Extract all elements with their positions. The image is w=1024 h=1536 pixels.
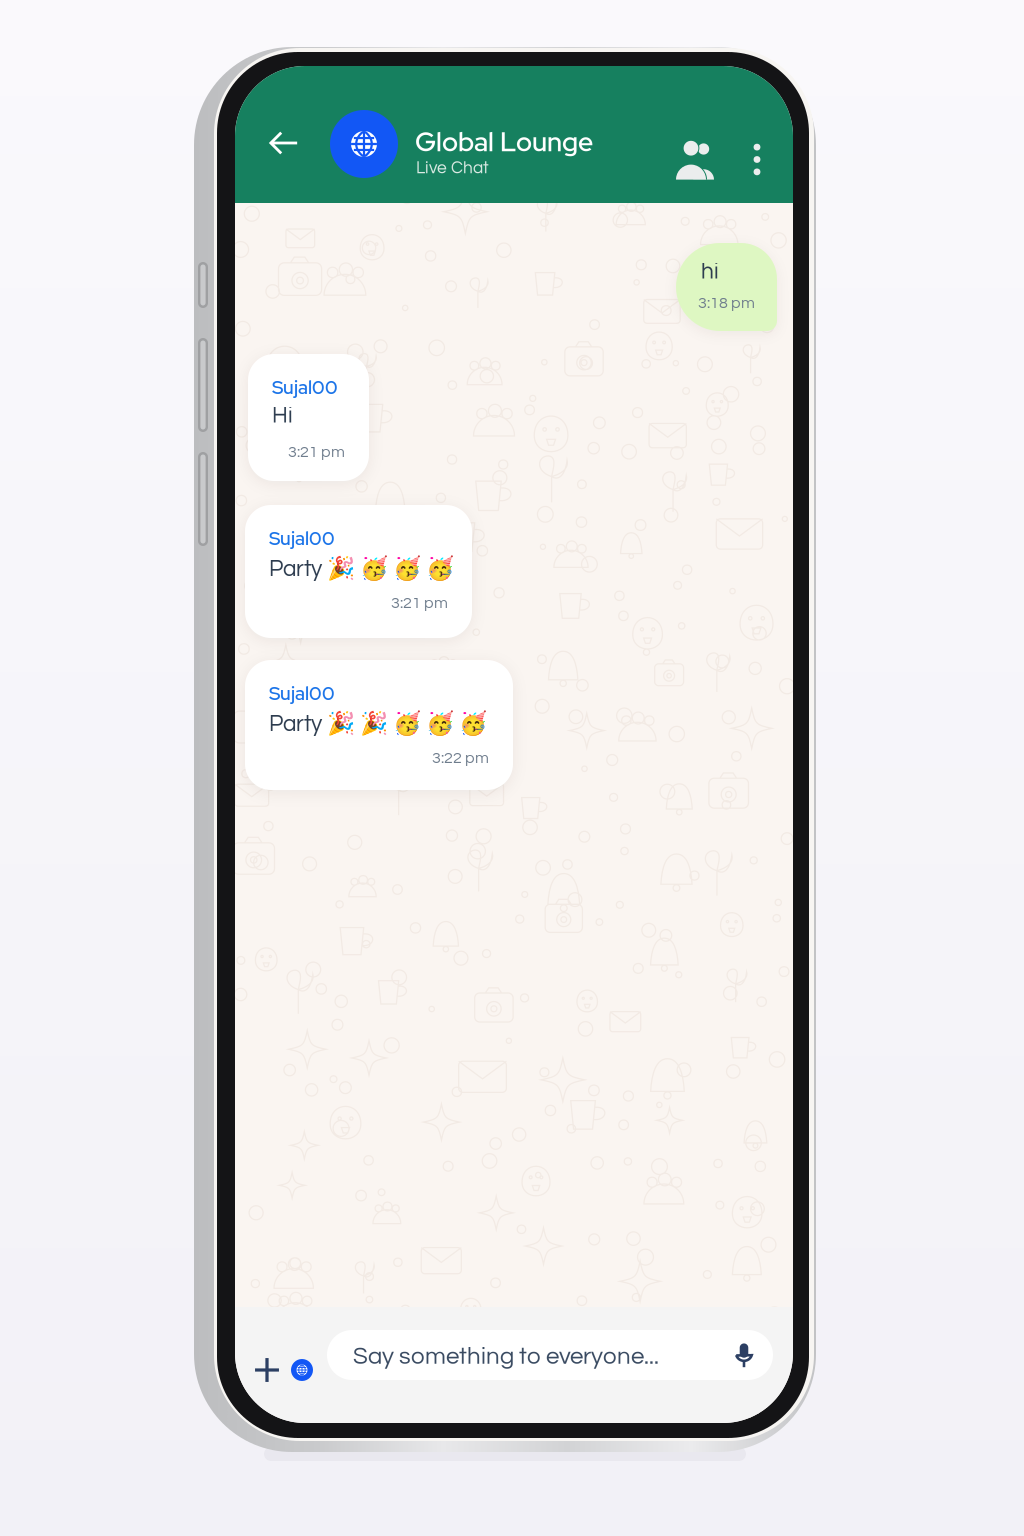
button[interactable]: Back [255, 114, 313, 172]
button[interactable]: More options [747, 147, 767, 172]
staticText: Sujal00 [269, 526, 335, 551]
staticText: Party 🎉 🎉 🥳 🥳 🥳 [269, 710, 487, 737]
staticText: 3:18 pm [698, 295, 755, 311]
staticText: Hi [272, 404, 293, 427]
button[interactable]: Participants [675, 140, 715, 173]
staticText: Sujal00 [269, 681, 335, 706]
staticText: Say something to everyone... [353, 1344, 659, 1369]
staticText: 3:21 pm [288, 444, 345, 460]
button[interactable]: Attach [241, 1344, 293, 1396]
staticText: 3:21 pm [391, 595, 448, 611]
staticText: Live Chat [416, 159, 489, 177]
button[interactable]: Say something to everyone... [327, 1330, 773, 1380]
staticText: Party 🎉 🥳 🥳 🥳 [269, 555, 454, 582]
button[interactable]: Translate [282, 1344, 322, 1396]
button[interactable]: Global Lounge group [330, 110, 398, 178]
staticText: Global Lounge [415, 124, 593, 159]
staticText: hi [701, 260, 719, 283]
staticText: 3:22 pm [432, 750, 489, 766]
staticText: Sujal00 [272, 375, 338, 400]
